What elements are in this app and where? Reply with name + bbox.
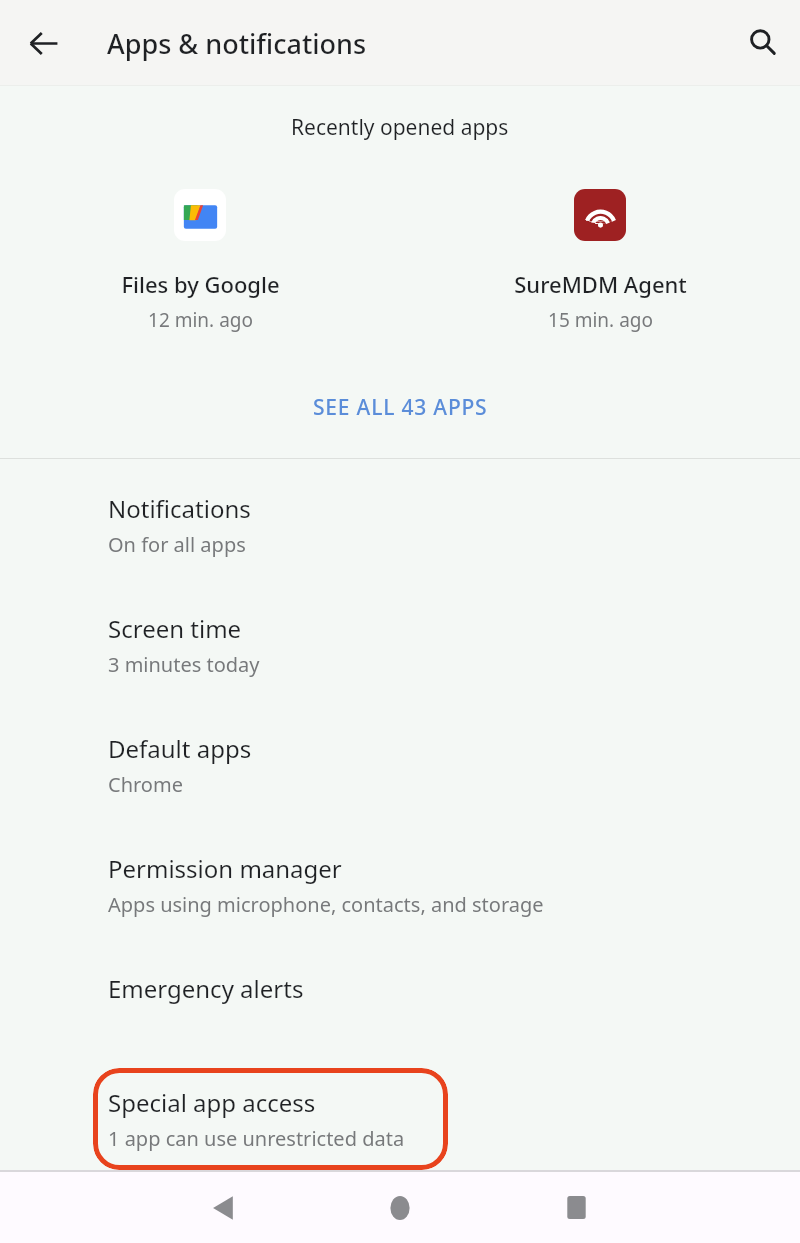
- staticText: Chrome: [108, 771, 183, 798]
- staticText: On for all apps: [108, 531, 246, 558]
- staticText: Default apps: [108, 732, 252, 765]
- staticText: Files by Google: [121, 269, 280, 299]
- staticText: Notifications: [108, 492, 251, 525]
- staticText: Permission manager: [108, 852, 342, 885]
- button[interactable]: Files by Google: [0, 186, 400, 336]
- button[interactable]: SEE ALL 43 APPS: [293, 384, 508, 431]
- staticText: Apps & notifications: [107, 25, 367, 62]
- button[interactable]: Default apps: [0, 717, 800, 837]
- button[interactable]: Recent apps: [488, 1172, 664, 1243]
- button[interactable]: Emergency alerts: [0, 957, 800, 1068]
- staticText: 1 app can use unrestricted data: [108, 1125, 405, 1152]
- button[interactable]: SureMDM Agent: [400, 186, 800, 336]
- staticText: SEE ALL 43 APPS: [313, 393, 488, 422]
- button[interactable]: Back: [136, 1172, 312, 1243]
- button[interactable]: Search: [735, 15, 791, 71]
- staticText: Emergency alerts: [108, 972, 304, 1005]
- button[interactable]: Special app access: [93, 1068, 448, 1170]
- staticText: 15 min. ago: [548, 307, 653, 333]
- staticText: Recently opened apps: [291, 113, 509, 142]
- staticText: Screen time: [108, 612, 242, 645]
- staticText: 12 min. ago: [148, 307, 253, 333]
- button[interactable]: Screen time: [0, 597, 800, 717]
- button[interactable]: Home: [312, 1172, 488, 1243]
- staticText: SureMDM Agent: [514, 269, 687, 299]
- button[interactable]: Notifications: [0, 477, 800, 597]
- staticText: 3 minutes today: [108, 651, 260, 678]
- button[interactable]: Back: [15, 15, 71, 71]
- staticText: Apps using microphone, contacts, and sto…: [108, 891, 544, 918]
- button[interactable]: Permission manager: [0, 837, 800, 957]
- staticText: Special app access: [108, 1086, 316, 1119]
